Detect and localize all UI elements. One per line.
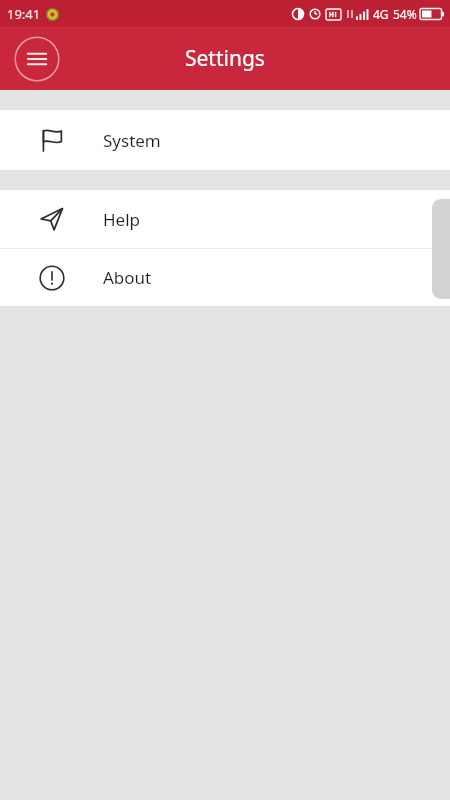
staticText: 54%	[393, 6, 417, 22]
staticText: Settings	[185, 44, 265, 73]
button[interactable]: About	[0, 249, 450, 306]
staticText: 19:41	[7, 5, 41, 23]
button[interactable]: Open navigation menu	[14, 36, 60, 82]
staticText: System	[103, 129, 161, 152]
button[interactable]: Help	[0, 190, 450, 248]
staticText: 4G	[373, 6, 389, 22]
staticText: Help	[103, 208, 141, 231]
staticText: About	[103, 266, 152, 289]
button[interactable]: System	[0, 110, 450, 170]
